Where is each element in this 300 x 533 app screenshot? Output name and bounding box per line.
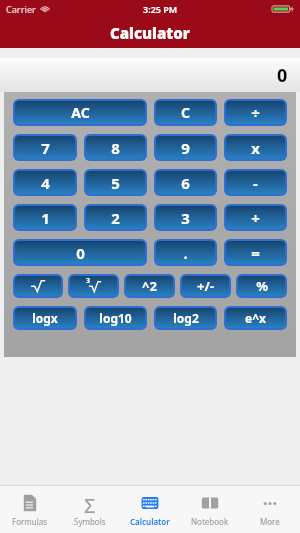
button[interactable]: 1 [15,206,75,229]
staticText: Calculator [110,23,190,43]
button[interactable]: More [240,486,300,533]
button[interactable]: 4 [15,171,75,194]
staticText: 5 [111,173,120,193]
staticText: 0 [76,243,85,263]
button[interactable]: log10 [86,308,145,328]
button[interactable]: 5 [86,171,145,194]
staticText: 9 [181,138,190,158]
staticText: +/- [197,277,214,295]
button[interactable]: 9 [156,136,215,159]
staticText: 4 [41,173,50,193]
button[interactable]: ^2 [126,276,173,296]
button[interactable]: % [238,276,285,296]
button[interactable]: e^x [226,308,285,328]
button[interactable]: C [156,101,215,124]
staticText: 8 [111,138,120,158]
staticText: 3 [86,276,91,286]
button[interactable]: 3 [70,276,117,296]
button[interactable]: - [226,171,285,194]
button[interactable]: AC [15,101,145,124]
button[interactable]: ÷ [226,101,285,124]
button[interactable]: 7 [15,136,75,159]
staticText: x [251,138,260,158]
button[interactable]: 8 [86,136,145,159]
staticText: 6 [181,173,190,193]
button[interactable]: Notebook [180,486,240,533]
staticText: log2 [173,310,199,326]
staticText: Σ [84,492,96,514]
staticText: Carrier [6,3,36,15]
button[interactable]: Formulas [0,486,60,533]
staticText: Formulas [12,516,48,527]
staticText: log10 [99,310,132,326]
staticText: Notebook [191,516,229,527]
staticText: ÷ [251,103,260,123]
button[interactable]: 0 [15,241,145,264]
staticText: Symbols [74,516,106,527]
button[interactable]: Σ [60,486,120,533]
staticText: 1 [41,208,50,228]
button[interactable]: log2 [156,308,215,328]
button[interactable]: Calculator [120,486,180,533]
staticText: 3:25 PM [143,3,178,15]
button[interactable]: 2 [86,206,145,229]
button[interactable]: + [226,206,285,229]
button[interactable]: x [226,136,285,159]
button[interactable]: logx [15,308,75,328]
staticText: C [181,103,190,122]
staticText: AC [71,103,90,122]
staticText: e^x [245,310,266,326]
staticText: 0 [277,63,288,88]
staticText: 3 [181,208,190,228]
button[interactable] [15,276,61,296]
button[interactable]: 6 [156,171,215,194]
staticText: ^2 [142,277,157,295]
staticText: . [183,243,188,263]
button[interactable]: +/- [182,276,229,296]
staticText: = [251,243,260,263]
staticText: More [260,516,280,527]
staticText: logx [32,310,58,326]
staticText: Calculator [130,516,170,527]
staticText: % [256,277,268,295]
button[interactable]: . [156,241,215,264]
staticText: + [251,208,260,228]
button[interactable]: = [226,241,285,264]
button[interactable]: 3 [156,206,215,229]
staticText: 7 [41,138,50,158]
staticText: 2 [111,208,120,228]
staticText: - [253,173,258,193]
